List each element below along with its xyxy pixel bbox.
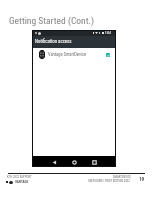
staticText: Getting Started (Cont.) [9, 15, 94, 26]
staticText: Vantage SmartDevice [48, 52, 87, 57]
staticText: USER GUIDE | FIRST EDITION 2022 [88, 179, 130, 183]
button[interactable]: Home [72, 160, 77, 165]
staticText: 19 [139, 176, 145, 182]
button[interactable]: Back [52, 160, 57, 165]
button[interactable]: Notification access enabled [106, 53, 110, 57]
staticText: KTH 2022 SUPPORT [7, 175, 32, 179]
staticText: VANTAGE [15, 180, 29, 184]
staticText: Notification access [35, 39, 72, 45]
staticText: 1:04 [105, 31, 111, 35]
staticText: SMARTDEVICE [113, 175, 131, 179]
button[interactable]: Vantage SmartDevice [32, 48, 116, 61]
button[interactable]: Recent apps [92, 160, 97, 165]
